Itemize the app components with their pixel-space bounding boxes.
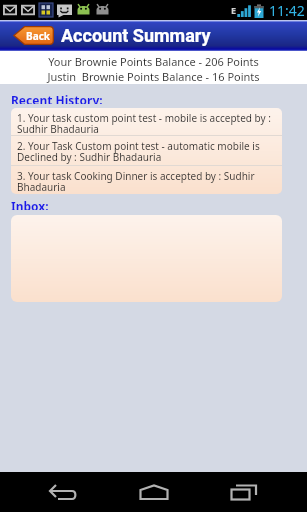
staticText: E bbox=[231, 4, 237, 16]
button[interactable]: Back bbox=[35, 472, 91, 512]
button[interactable]: 2. Your Task Custom point test - automat… bbox=[11, 136, 282, 165]
staticText: 3. Your task Cooking Dinner is accepted … bbox=[17, 169, 277, 194]
staticText: Your Brownie Points Balance - 206 Points bbox=[48, 54, 259, 69]
button[interactable]: Recent apps bbox=[216, 472, 272, 512]
button[interactable]: Back bbox=[13, 26, 54, 45]
staticText: Inbox: bbox=[11, 198, 49, 210]
button[interactable]: Home bbox=[126, 472, 182, 512]
staticText: Recent History: bbox=[11, 92, 103, 104]
button[interactable] bbox=[11, 215, 282, 302]
staticText: Account Summary bbox=[61, 25, 211, 46]
staticText: Justin Brownie Points Balance - 16 Point… bbox=[47, 69, 260, 84]
staticText: 1. Your task custom point test - mobile … bbox=[17, 111, 277, 135]
staticText: 2. Your Task Custom point test - automat… bbox=[17, 139, 277, 164]
button[interactable]: 3. Your task Cooking Dinner is accepted … bbox=[11, 166, 282, 194]
staticText: 11:42 bbox=[269, 1, 305, 20]
button[interactable]: 1. Your task custom point test - mobile … bbox=[11, 108, 282, 135]
staticText: Back bbox=[26, 29, 50, 43]
